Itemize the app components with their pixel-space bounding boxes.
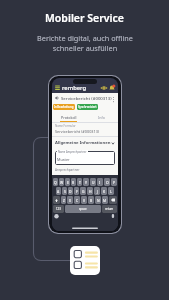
staticText: return bbox=[105, 207, 114, 211]
button[interactable]: P bbox=[111, 178, 117, 186]
button[interactable]: C bbox=[74, 196, 80, 204]
button[interactable]: G bbox=[80, 187, 86, 195]
staticText: Z bbox=[63, 198, 65, 203]
button[interactable]: Menu bbox=[55, 85, 60, 90]
staticText: S bbox=[64, 189, 66, 194]
staticText: Berichte digital, auch offline schneller… bbox=[37, 33, 133, 53]
button[interactable]: W bbox=[59, 178, 64, 186]
button[interactable]: X bbox=[67, 196, 73, 204]
button[interactable]: S bbox=[62, 187, 67, 195]
button[interactable]: V bbox=[81, 196, 87, 204]
button[interactable]: Info bbox=[85, 113, 118, 122]
staticText: A bbox=[57, 189, 60, 194]
staticText: D bbox=[69, 189, 72, 194]
staticText: Name Ansprechpartner bbox=[58, 150, 87, 154]
button[interactable]: Protokoll bbox=[52, 113, 85, 122]
staticText: Muster bbox=[57, 157, 70, 162]
button[interactable]: Notifications bbox=[109, 85, 115, 91]
button[interactable]: F bbox=[74, 187, 79, 195]
staticText: Allgemeine Informationen bbox=[55, 140, 111, 146]
staticText: X bbox=[69, 198, 71, 203]
staticText: space bbox=[79, 207, 87, 211]
staticText: K bbox=[103, 189, 106, 194]
staticText: F bbox=[76, 189, 78, 194]
button[interactable]: Synchronisiert bbox=[78, 105, 97, 109]
staticText: Servicebericht (#000313) bbox=[55, 129, 99, 134]
button[interactable]: B bbox=[88, 196, 94, 204]
staticText: Protokoll bbox=[61, 115, 77, 120]
button[interactable]: Checklist bbox=[70, 246, 100, 275]
staticText: Mobiler Service bbox=[45, 11, 124, 25]
staticText: In Bearbeitung bbox=[54, 105, 74, 109]
staticText: Info bbox=[98, 115, 105, 120]
button[interactable]: A bbox=[56, 187, 61, 195]
staticText: 123 bbox=[56, 207, 61, 211]
staticText: R bbox=[72, 180, 75, 185]
staticText: O bbox=[106, 180, 109, 185]
button[interactable]: K bbox=[101, 187, 107, 195]
button[interactable]: U bbox=[90, 178, 96, 186]
button[interactable]: E bbox=[65, 178, 70, 186]
staticText: N bbox=[97, 198, 100, 203]
button[interactable]: O bbox=[104, 178, 110, 186]
staticText: Synchronisiert bbox=[78, 105, 97, 109]
button[interactable]: Y bbox=[83, 178, 89, 186]
staticText: C bbox=[76, 198, 79, 203]
button[interactable]: In Bearbeitung bbox=[54, 105, 74, 109]
staticText: I bbox=[99, 180, 101, 185]
button[interactable]: 123 bbox=[53, 205, 64, 213]
button[interactable]: I bbox=[97, 178, 103, 186]
button[interactable]: Z bbox=[61, 196, 66, 204]
staticText: remberg bbox=[62, 84, 87, 92]
button[interactable]: Backspace bbox=[109, 196, 117, 204]
staticText: Servicebericht (#000313) bbox=[61, 95, 112, 101]
staticText: E bbox=[67, 180, 69, 185]
staticText: Q bbox=[54, 180, 57, 185]
button[interactable]: H bbox=[87, 187, 93, 195]
button[interactable]: R bbox=[71, 178, 76, 186]
staticText: Ansprechpartner bbox=[55, 168, 80, 172]
button[interactable]: Support bbox=[101, 85, 107, 91]
button[interactable]: D bbox=[68, 187, 73, 195]
button[interactable]: Shift bbox=[53, 196, 60, 204]
staticText: B bbox=[90, 198, 93, 203]
staticText: G bbox=[82, 189, 85, 194]
staticText: Y bbox=[85, 180, 87, 185]
staticText: W bbox=[60, 180, 64, 185]
button[interactable]: J bbox=[94, 187, 100, 195]
staticText: H bbox=[89, 189, 92, 194]
staticText: J bbox=[97, 189, 98, 194]
button[interactable]: N bbox=[95, 196, 101, 204]
staticText: M bbox=[103, 198, 107, 203]
staticText: U bbox=[92, 180, 95, 185]
button[interactable]: Q bbox=[53, 178, 58, 186]
button[interactable]: T bbox=[77, 178, 82, 186]
button[interactable]: M bbox=[102, 196, 108, 204]
staticText: T bbox=[79, 180, 81, 185]
button[interactable]: L bbox=[108, 187, 114, 195]
staticText: L bbox=[110, 189, 112, 194]
button[interactable]: return bbox=[102, 205, 117, 213]
button[interactable]: space bbox=[65, 205, 101, 213]
staticText: P bbox=[113, 180, 116, 185]
staticText: Name Formular bbox=[55, 124, 76, 128]
staticText: V bbox=[83, 198, 86, 203]
